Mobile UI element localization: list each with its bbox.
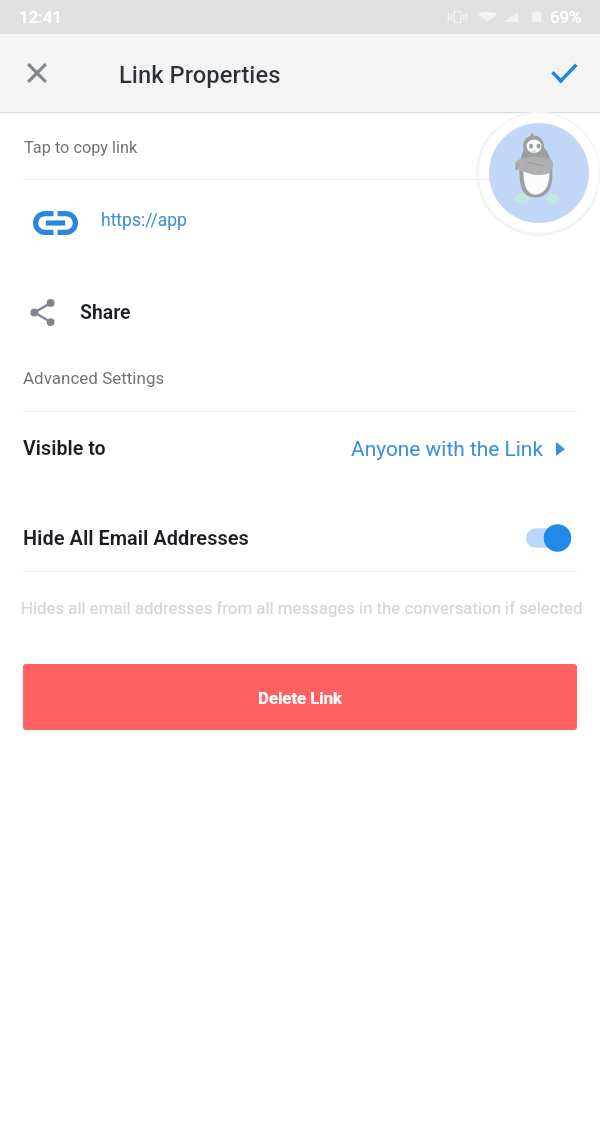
staticText: Tap to copy link — [24, 138, 138, 157]
staticText: Anyone with the Link — [351, 437, 543, 461]
staticText: 12:41 — [19, 7, 63, 27]
staticText: Hide All Email Addresses — [23, 526, 249, 549]
button[interactable]: Share — [0, 278, 600, 346]
button[interactable]: Close — [13, 49, 61, 97]
button[interactable]: https://app — [0, 180, 600, 245]
button[interactable]: Confirm — [540, 49, 588, 97]
staticText: Delete Link — [258, 689, 342, 709]
staticText: 69% — [550, 7, 582, 27]
staticText: Hides all email addresses from all messa… — [21, 598, 583, 618]
button[interactable]: Delete Link — [23, 664, 577, 730]
staticText: Share — [80, 301, 131, 324]
staticText: Advanced Settings — [23, 368, 165, 388]
staticText: https://app — [101, 210, 187, 231]
staticText: Link Properties — [119, 61, 281, 89]
button[interactable]: Tap to copy link — [0, 112, 600, 179]
staticText: Visible to — [23, 437, 106, 460]
button[interactable]: Hide All Email Addresses — [0, 504, 600, 571]
button[interactable]: Visible to — [0, 412, 600, 485]
